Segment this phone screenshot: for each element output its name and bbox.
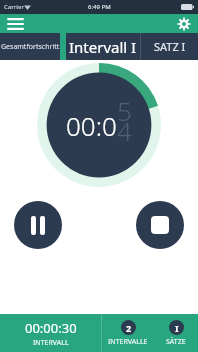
staticText: SATZ I xyxy=(154,39,186,54)
button[interactable]: I xyxy=(154,314,198,352)
staticText: SÄTZE xyxy=(166,337,186,347)
staticText: Carrier xyxy=(4,3,24,11)
button[interactable]: Gesamtfortschritt xyxy=(0,33,60,60)
staticText: INTERVALLE xyxy=(108,337,148,347)
button[interactable]: 2 xyxy=(102,314,154,352)
staticText: 2 xyxy=(126,322,132,334)
staticText: 4 xyxy=(117,113,132,148)
staticText: Gesamtfortschritt xyxy=(1,42,60,52)
button[interactable]: Settings xyxy=(175,15,193,33)
staticText: I xyxy=(175,322,179,334)
button[interactable]: Menu xyxy=(4,14,26,33)
staticText: INTERVALL xyxy=(33,338,69,348)
staticText: 00:0 xyxy=(66,108,117,143)
button[interactable]: Pause xyxy=(14,201,62,249)
button[interactable]: 00:00:30 xyxy=(0,314,101,352)
button[interactable]: Intervall I xyxy=(66,33,140,60)
button[interactable]: Stop xyxy=(136,201,184,249)
staticText: Intervall I xyxy=(69,37,137,57)
staticText: 5 xyxy=(117,93,132,128)
button[interactable]: SATZ I xyxy=(141,33,198,60)
staticText: 00:00:30 xyxy=(25,319,77,337)
staticText: 6:49 PM xyxy=(88,3,111,11)
